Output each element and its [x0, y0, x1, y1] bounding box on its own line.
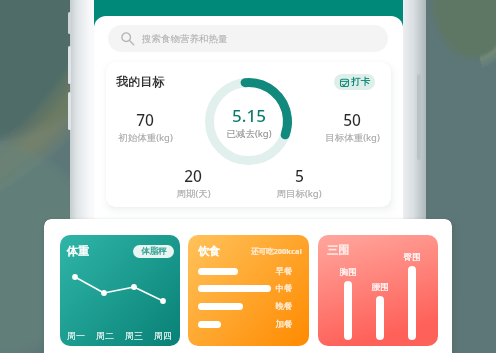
button[interactable]: 打卡: [334, 74, 375, 90]
button[interactable]: 体重: [60, 235, 180, 346]
button[interactable]: 三围: [318, 235, 438, 346]
staticText: 周目标(kg): [276, 187, 322, 200]
staticText: 5.15: [232, 104, 266, 127]
staticText: 早餐: [267, 266, 301, 277]
staticText: 体脂秤: [141, 246, 167, 257]
staticText: 周三: [104, 330, 164, 341]
staticText: 周一: [60, 330, 106, 341]
staticText: 20: [184, 165, 202, 186]
staticText: 初始体重(kg): [118, 131, 173, 144]
staticText: 70: [136, 109, 154, 130]
staticText: 周二: [75, 330, 135, 341]
staticText: 腰围: [365, 282, 395, 293]
staticText: 已减去(kg): [226, 127, 272, 140]
staticText: 目标体重(kg): [325, 131, 380, 144]
button[interactable]: 体脂秤: [133, 245, 174, 258]
staticText: 胸围: [333, 267, 363, 278]
staticText: 我的目标: [116, 74, 164, 89]
staticText: 周四: [133, 330, 180, 341]
staticText: 中餐: [267, 283, 301, 294]
staticText: 三围: [327, 243, 349, 257]
staticText: 5: [295, 165, 304, 186]
staticText: 还可吃200kcal: [251, 246, 302, 256]
button[interactable]: 我的目标: [106, 62, 391, 207]
staticText: 饮食: [198, 244, 220, 258]
staticText: 50: [343, 109, 361, 130]
staticText: 打卡: [351, 76, 370, 88]
staticText: 体重: [67, 244, 89, 258]
button[interactable]: 搜索食物营养和热量: [108, 25, 388, 52]
staticText: 周期(天): [176, 187, 211, 200]
button[interactable]: 饮食: [188, 235, 309, 346]
staticText: 晚餐: [267, 301, 301, 312]
staticText: 加餐: [267, 319, 301, 330]
staticText: 臀围: [397, 252, 427, 263]
staticText: 搜索食物营养和热量: [142, 33, 228, 45]
